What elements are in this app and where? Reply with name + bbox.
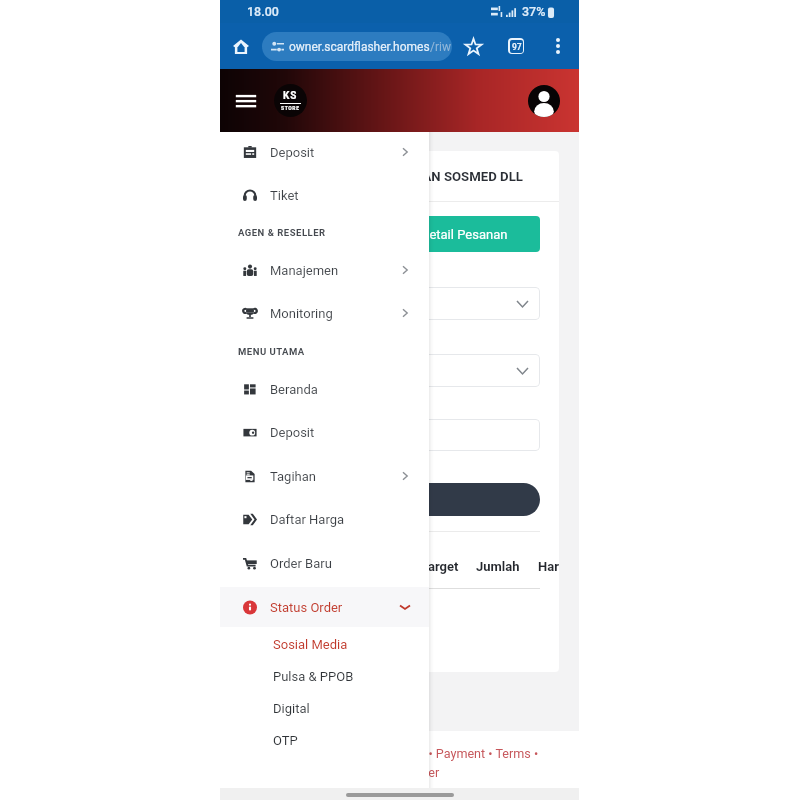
button[interactable]: Pulsa & PPOB <box>220 661 429 691</box>
staticText: Daftar Harga <box>270 512 345 527</box>
staticText: 18.00 <box>247 4 279 19</box>
button[interactable]: Open menu <box>229 84 263 118</box>
button[interactable]: Tiket <box>220 175 429 215</box>
staticText: Sosial Media <box>273 637 348 652</box>
staticText: Status Order <box>270 600 343 615</box>
button[interactable]: Daftar Harga <box>220 499 429 539</box>
staticText: API • Tentang • Kontak • Privasi • Payme… <box>252 746 539 761</box>
staticText: 37% <box>522 4 546 19</box>
button[interactable]: Deposit <box>220 132 429 172</box>
button[interactable]: Manajemen <box>220 250 429 290</box>
button[interactable]: More options <box>545 33 571 59</box>
staticText: Manajemen <box>270 263 339 278</box>
staticText: MENU UTAMA <box>238 346 305 357</box>
staticText: ORDER LAYANAN PULSA DAN SOSMED DLL <box>262 169 523 184</box>
staticText: Lihat Detail Pesanan <box>389 227 508 242</box>
button[interactable]: Home <box>226 31 256 61</box>
staticText: Deposit <box>270 145 315 160</box>
staticText: KS <box>283 90 298 102</box>
button[interactable]: Tabs <box>502 32 530 60</box>
button[interactable] <box>243 354 540 387</box>
button[interactable]: Bookmark <box>459 32 487 60</box>
staticText: Monitoring <box>270 306 333 321</box>
staticText: /riw <box>430 40 451 54</box>
staticText: OTP <box>273 733 298 748</box>
button[interactable] <box>243 483 540 516</box>
button[interactable]: Sosial Media <box>220 629 429 659</box>
staticText: Harga <box>538 559 559 574</box>
staticText: Tagihan <box>270 469 316 484</box>
button[interactable]: Lihat Detail Pesanan <box>243 216 540 252</box>
button[interactable]: Status Order <box>220 587 429 627</box>
button[interactable]: Monitoring <box>220 293 429 333</box>
button[interactable] <box>243 419 540 451</box>
button[interactable]: owner.scardflasher.homes <box>262 32 452 61</box>
button[interactable]: Tagihan <box>220 456 429 496</box>
button[interactable]: Order Baru <box>220 543 429 583</box>
staticText: STORE <box>281 105 300 111</box>
staticText: Sitemap • Disclaimer <box>323 765 440 780</box>
staticText: Pulsa & PPOB <box>273 669 354 684</box>
staticText: 97 <box>512 42 522 52</box>
button[interactable]: OTP <box>220 725 429 755</box>
staticText: Jumlah <box>476 559 520 574</box>
button[interactable]: Account <box>528 85 560 117</box>
staticText: Order Baru <box>270 556 332 571</box>
staticText: Target <box>421 559 459 574</box>
button[interactable]: Beranda <box>220 369 429 409</box>
staticText: Beranda <box>270 382 318 397</box>
staticText: Digital <box>273 701 310 716</box>
button[interactable] <box>243 287 540 320</box>
staticText: AGEN & RESELLER <box>238 227 326 238</box>
staticText: owner.scardflasher.homes <box>289 40 430 54</box>
staticText: Tiket <box>270 188 299 203</box>
staticText: Deposit <box>270 425 315 440</box>
button[interactable]: Digital <box>220 693 429 723</box>
button[interactable]: Deposit <box>220 412 429 452</box>
